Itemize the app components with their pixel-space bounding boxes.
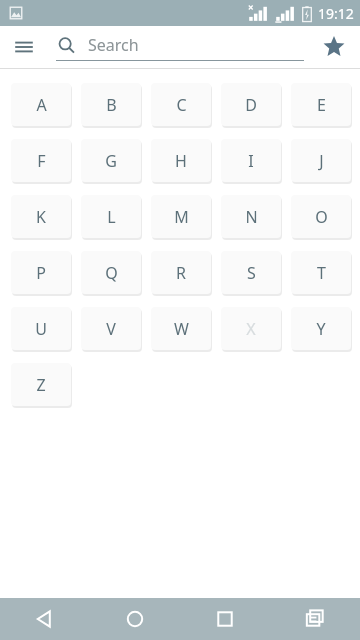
button[interactable]: F <box>11 139 71 182</box>
button[interactable]: C <box>151 83 211 126</box>
button[interactable]: E <box>291 83 351 126</box>
button[interactable]: M <box>151 195 211 238</box>
staticText: U <box>35 318 47 340</box>
staticText: R <box>176 262 186 284</box>
staticText: E <box>317 94 326 116</box>
button[interactable]: Z <box>11 363 71 406</box>
staticText: Q <box>105 262 118 284</box>
button[interactable]: A <box>11 83 71 126</box>
staticText: Y <box>316 318 326 340</box>
button[interactable]: T <box>291 251 351 294</box>
button[interactable]: Q <box>81 251 141 294</box>
button[interactable]: B <box>81 83 141 126</box>
staticText: D <box>245 94 257 116</box>
button[interactable]: X <box>221 307 281 350</box>
button[interactable]: I <box>221 139 281 182</box>
button[interactable]: L <box>81 195 141 238</box>
button[interactable]: O <box>291 195 351 238</box>
staticText: V <box>106 318 116 340</box>
button[interactable]: Home <box>90 598 180 640</box>
staticText: M <box>174 206 189 228</box>
button[interactable]: Switch app <box>270 598 360 640</box>
button[interactable]: Recent apps <box>180 598 270 640</box>
button[interactable]: N <box>221 195 281 238</box>
staticText: X <box>246 318 256 340</box>
button[interactable]: D <box>221 83 281 126</box>
staticText: H <box>175 150 187 172</box>
button[interactable]: S <box>221 251 281 294</box>
button[interactable]: H <box>151 139 211 182</box>
button[interactable]: K <box>11 195 71 238</box>
staticText: A <box>36 94 47 116</box>
staticText: J <box>319 150 324 172</box>
staticText: O <box>315 206 328 228</box>
button[interactable]: R <box>151 251 211 294</box>
staticText: F <box>37 150 46 172</box>
staticText: G <box>105 150 117 172</box>
button[interactable]: U <box>11 307 71 350</box>
staticText: I <box>248 150 254 172</box>
staticText: C <box>176 94 187 116</box>
staticText: S <box>247 262 256 284</box>
button[interactable]: Open navigation menu <box>6 29 42 65</box>
staticText: L <box>107 206 116 228</box>
staticText: B <box>106 94 117 116</box>
button[interactable]: G <box>81 139 141 182</box>
button[interactable]: J <box>291 139 351 182</box>
button[interactable]: Favorites <box>314 27 354 67</box>
staticText: K <box>36 206 46 228</box>
button[interactable]: Back <box>0 598 90 640</box>
staticText: N <box>245 206 258 228</box>
staticText: Z <box>36 374 46 396</box>
staticText: Search <box>88 34 139 56</box>
button[interactable]: W <box>151 307 211 350</box>
staticText: 19:12 <box>318 4 354 23</box>
button[interactable]: Search <box>56 30 304 64</box>
button[interactable]: P <box>11 251 71 294</box>
staticText: W <box>174 318 189 340</box>
staticText: T <box>317 262 326 284</box>
staticText: P <box>36 262 46 284</box>
button[interactable]: V <box>81 307 141 350</box>
button[interactable]: Y <box>291 307 351 350</box>
